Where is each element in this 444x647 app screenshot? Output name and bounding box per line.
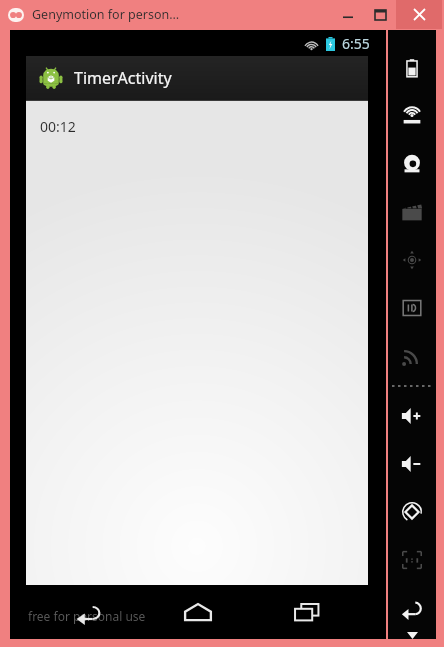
button[interactable]: More — [392, 632, 432, 639]
button[interactable]: Camera — [388, 140, 436, 188]
button[interactable]: Volume down — [388, 440, 436, 488]
button[interactable]: Maximize — [364, 0, 396, 29]
button[interactable]: Identifiers — [388, 284, 436, 332]
button[interactable]: Back — [388, 584, 436, 632]
button[interactable]: One to one scale — [388, 536, 436, 584]
button[interactable]: Battery — [388, 44, 436, 92]
button[interactable]: Rotate screen — [388, 488, 436, 536]
button[interactable]: Video recording — [388, 188, 436, 236]
button[interactable]: Close — [396, 0, 442, 29]
button[interactable]: TimerActivity — [26, 56, 368, 100]
staticText: 00:12 — [40, 117, 76, 136]
staticText: 6:55 — [342, 34, 370, 53]
button[interactable]: Recent apps — [277, 587, 337, 637]
button[interactable]: Volume up — [388, 392, 436, 440]
button[interactable]: Rotation control — [388, 236, 436, 284]
staticText: Genymotion for personal use - Samsung Ga… — [32, 6, 182, 23]
staticText: TimerActivity — [74, 67, 172, 89]
button[interactable]: Network — [388, 332, 436, 380]
button[interactable]: Minimize — [332, 0, 364, 29]
button[interactable]: Back — [59, 587, 119, 637]
button[interactable]: Home — [168, 587, 228, 637]
staticText: free for personal use — [28, 608, 146, 624]
button[interactable]: GPS — [388, 92, 436, 140]
